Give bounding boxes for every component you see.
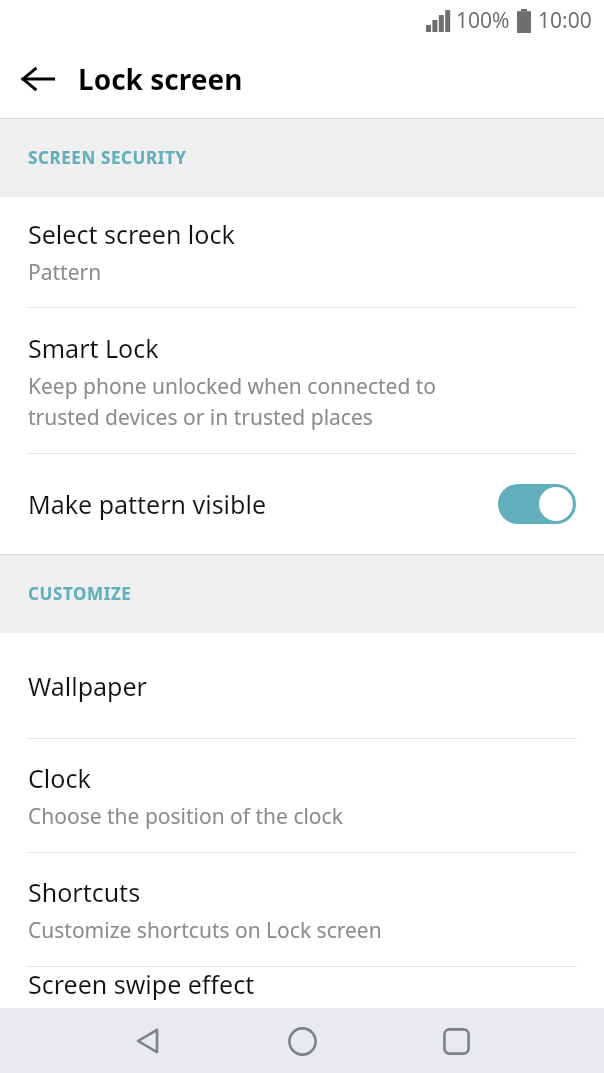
- button[interactable]: Screen swipe effect: [0, 967, 604, 1008]
- staticText: Customize shortcuts on Lock screen: [28, 916, 382, 945]
- button[interactable]: Back: [12, 53, 64, 105]
- button[interactable]: Clock: [0, 739, 604, 852]
- button[interactable]: Recent apps: [426, 1011, 486, 1071]
- staticText: Clock: [28, 761, 91, 795]
- staticText: 10:00: [538, 6, 592, 35]
- button[interactable]: Wallpaper: [0, 633, 604, 738]
- staticText: Keep phone unlocked when connected to tr…: [28, 372, 437, 431]
- staticText: Select screen lock: [28, 217, 235, 251]
- staticText: Smart Lock: [28, 331, 159, 365]
- staticText: Choose the position of the clock: [28, 802, 343, 831]
- button[interactable]: Back: [118, 1011, 178, 1071]
- staticText: Wallpaper: [28, 669, 147, 703]
- staticText: SCREEN SECURITY: [28, 146, 187, 169]
- button[interactable]: Make pattern visible: [0, 454, 604, 554]
- staticText: Shortcuts: [28, 875, 141, 909]
- staticText: Screen swipe effect: [28, 967, 255, 1001]
- button[interactable]: Shortcuts: [0, 853, 604, 966]
- staticText: Make pattern visible: [28, 487, 266, 521]
- staticText: Pattern: [28, 258, 102, 287]
- button[interactable]: Home: [272, 1011, 332, 1071]
- staticText: CUSTOMIZE: [28, 582, 132, 605]
- staticText: Lock screen: [78, 60, 243, 98]
- button[interactable]: Smart Lock: [0, 308, 604, 453]
- staticText: 100%: [456, 6, 510, 35]
- button[interactable]: Make pattern visible toggle: [498, 484, 576, 524]
- button[interactable]: Select screen lock: [0, 197, 604, 307]
